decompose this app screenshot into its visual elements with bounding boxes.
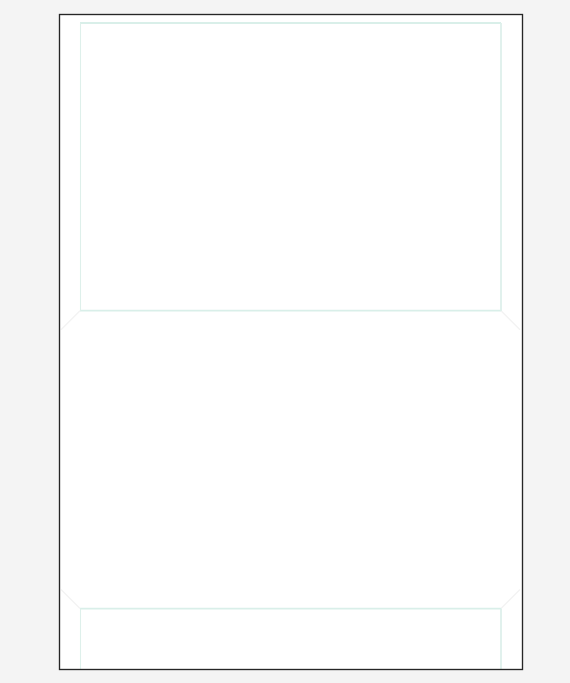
button[interactable]: Home xyxy=(59,609,175,670)
button[interactable]: List item xyxy=(59,455,523,527)
button[interactable] xyxy=(120,23,431,79)
button[interactable]: Navigate up xyxy=(80,31,120,71)
button[interactable]: Profile xyxy=(407,609,523,670)
button[interactable]: List item xyxy=(59,311,523,383)
button[interactable]: Saved xyxy=(291,609,407,670)
button[interactable]: Featured card xyxy=(80,79,502,311)
button[interactable]: Explore xyxy=(175,609,291,670)
button[interactable]: List item xyxy=(59,383,523,455)
button[interactable]: More options xyxy=(471,31,511,71)
button[interactable]: List item xyxy=(59,527,523,599)
